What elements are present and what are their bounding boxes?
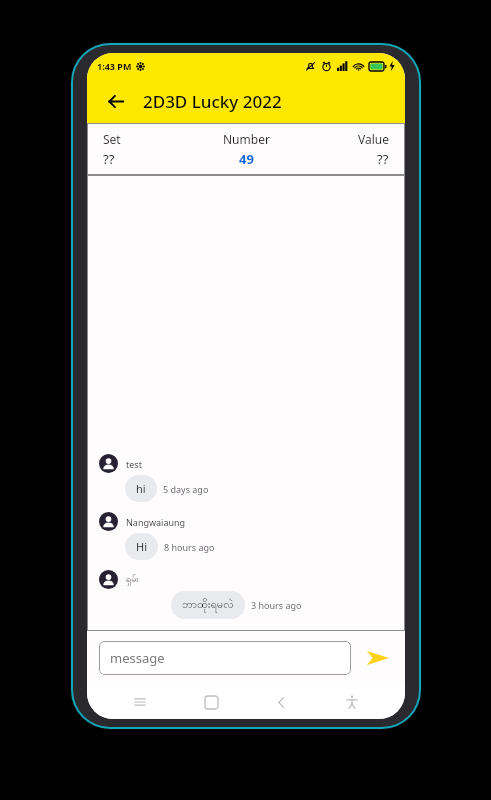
button[interactable]: message (99, 641, 351, 675)
staticText: Hi (136, 539, 147, 554)
staticText: Value (358, 131, 389, 147)
staticText: message (110, 649, 165, 667)
button[interactable]: Menu (123, 685, 157, 719)
staticText: 8 hours ago (164, 541, 215, 553)
staticText: 49 (239, 150, 254, 168)
staticText: test (126, 458, 142, 470)
staticText: 2D3D Lucky 2022 (143, 90, 282, 113)
button[interactable]: hi (125, 475, 157, 502)
button[interactable]: Back (264, 685, 298, 719)
button[interactable]: Hi (125, 533, 158, 560)
button[interactable]: Home (194, 685, 228, 719)
staticText: ?? (377, 150, 389, 168)
button[interactable]: Back (101, 86, 131, 116)
staticText: Set (103, 131, 121, 147)
staticText: 5 days ago (163, 483, 209, 495)
staticText: ရှမ်း (126, 573, 139, 586)
button[interactable]: ဘာထိုးရမလဲ (171, 591, 245, 619)
staticText: Nangwaiaung (126, 516, 186, 528)
staticText: Number (223, 131, 270, 147)
staticText: ဘာထိုးရမလဲ (182, 597, 234, 613)
button[interactable]: Accessibility (335, 685, 369, 719)
staticText: 3 hours ago (251, 599, 302, 611)
button[interactable]: Send (363, 643, 393, 673)
staticText: hi (136, 481, 146, 496)
staticText: ?? (103, 150, 115, 168)
staticText: 1:43 PM (97, 60, 132, 72)
